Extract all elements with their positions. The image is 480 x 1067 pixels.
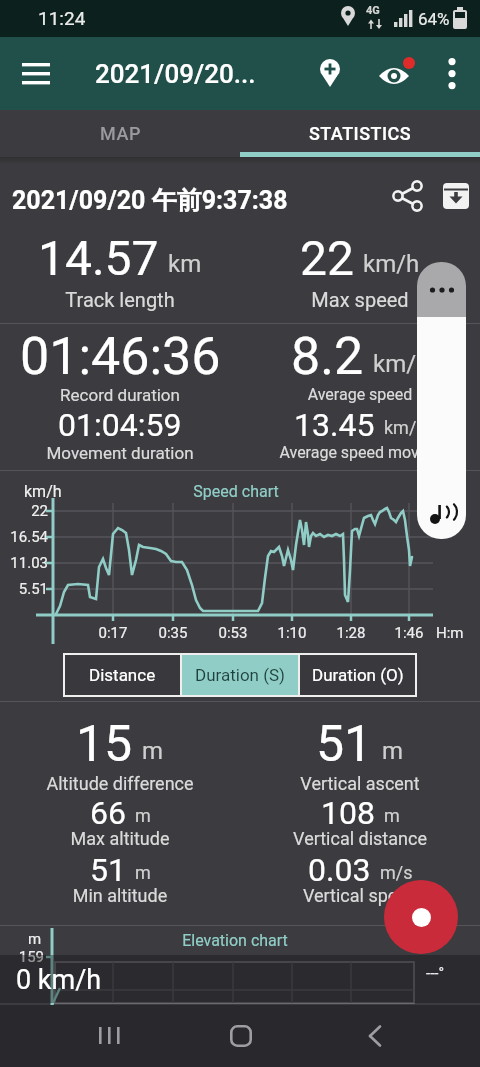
staticText: MAP: [100, 123, 141, 144]
staticText: 1:10: [267, 624, 317, 642]
staticText: 8.2: [291, 326, 364, 387]
button[interactable]: [0, 37, 72, 110]
staticText: 2021/09/20...: [95, 59, 315, 89]
staticText: 11:24: [38, 7, 138, 29]
staticText: 16.54: [0, 528, 48, 546]
staticText: 1:46: [384, 624, 434, 642]
button[interactable]: [430, 49, 474, 97]
button[interactable]: Duration (S): [181, 653, 299, 697]
staticText: m: [142, 737, 164, 765]
button[interactable]: [432, 172, 480, 220]
staticText: Vertical distance: [240, 828, 480, 849]
staticText: Vertical speed: [240, 885, 480, 906]
staticText: 4G: [366, 4, 396, 17]
button[interactable]: [384, 172, 432, 220]
staticText: 0 km/h: [16, 964, 216, 996]
button[interactable]: [206, 1005, 276, 1067]
staticText: km/h: [373, 350, 430, 378]
staticText: Vertical ascent: [240, 773, 480, 794]
staticText: km: [168, 250, 202, 278]
staticText: 2021/09/20 午前9:37:38: [12, 185, 352, 216]
staticText: Distance: [89, 665, 156, 685]
staticText: ---°: [426, 964, 480, 982]
staticText: 13.45: [294, 406, 375, 444]
staticText: m: [28, 930, 68, 948]
button[interactable]: [417, 262, 466, 317]
staticText: Max altitude: [0, 828, 240, 849]
staticText: 51: [90, 851, 126, 889]
staticText: 14.57: [38, 230, 159, 286]
staticText: 15: [76, 715, 133, 774]
staticText: STATISTICS: [309, 123, 412, 144]
staticText: 1:28: [326, 624, 376, 642]
staticText: Average speed: [240, 385, 480, 404]
staticText: Duration (S): [195, 665, 286, 685]
staticText: 5.51: [0, 580, 48, 598]
staticText: Average speed moving: [240, 443, 480, 462]
staticText: Speed chart: [176, 482, 296, 501]
staticText: 51: [316, 715, 373, 774]
staticText: 0:35: [148, 624, 198, 642]
button[interactable]: [384, 880, 458, 954]
button[interactable]: STATISTICS: [240, 110, 480, 157]
staticText: 0:53: [208, 624, 258, 642]
button[interactable]: Duration (O): [299, 653, 417, 697]
staticText: km/h: [24, 482, 84, 501]
staticText: 22: [0, 502, 48, 520]
staticText: 22: [300, 230, 354, 286]
button[interactable]: Distance: [63, 653, 181, 697]
staticText: 0.03: [308, 851, 371, 889]
staticText: m/s: [380, 862, 413, 883]
button[interactable]: MAP: [0, 110, 240, 157]
staticText: H:m: [436, 624, 480, 642]
button[interactable]: [370, 49, 418, 97]
staticText: Movement duration: [0, 443, 240, 463]
staticText: Min altitude: [0, 885, 240, 906]
staticText: Duration (O): [312, 665, 404, 685]
staticText: Altitude difference: [0, 773, 240, 794]
staticText: 01:46:36: [20, 326, 221, 387]
staticText: 01:04:59: [58, 406, 182, 444]
staticText: m: [384, 805, 400, 826]
staticText: 0:17: [88, 624, 138, 642]
staticText: 64%: [418, 9, 478, 29]
staticText: 108: [321, 794, 375, 832]
staticText: m: [382, 737, 404, 765]
staticText: Track length: [0, 288, 240, 311]
staticText: km/h: [363, 250, 420, 278]
staticText: m: [135, 805, 151, 826]
staticText: 11.03: [0, 554, 48, 572]
staticText: 66: [90, 794, 126, 832]
button[interactable]: [306, 49, 354, 97]
staticText: km/h: [384, 417, 427, 438]
staticText: Record duration: [0, 385, 240, 405]
button[interactable]: [340, 1005, 410, 1067]
staticText: 159: [0, 948, 44, 966]
staticText: Elevation chart: [170, 931, 300, 950]
staticText: m: [135, 862, 151, 883]
button[interactable]: [75, 1005, 145, 1067]
button[interactable]: [417, 484, 466, 539]
staticText: Max speed: [240, 288, 480, 311]
